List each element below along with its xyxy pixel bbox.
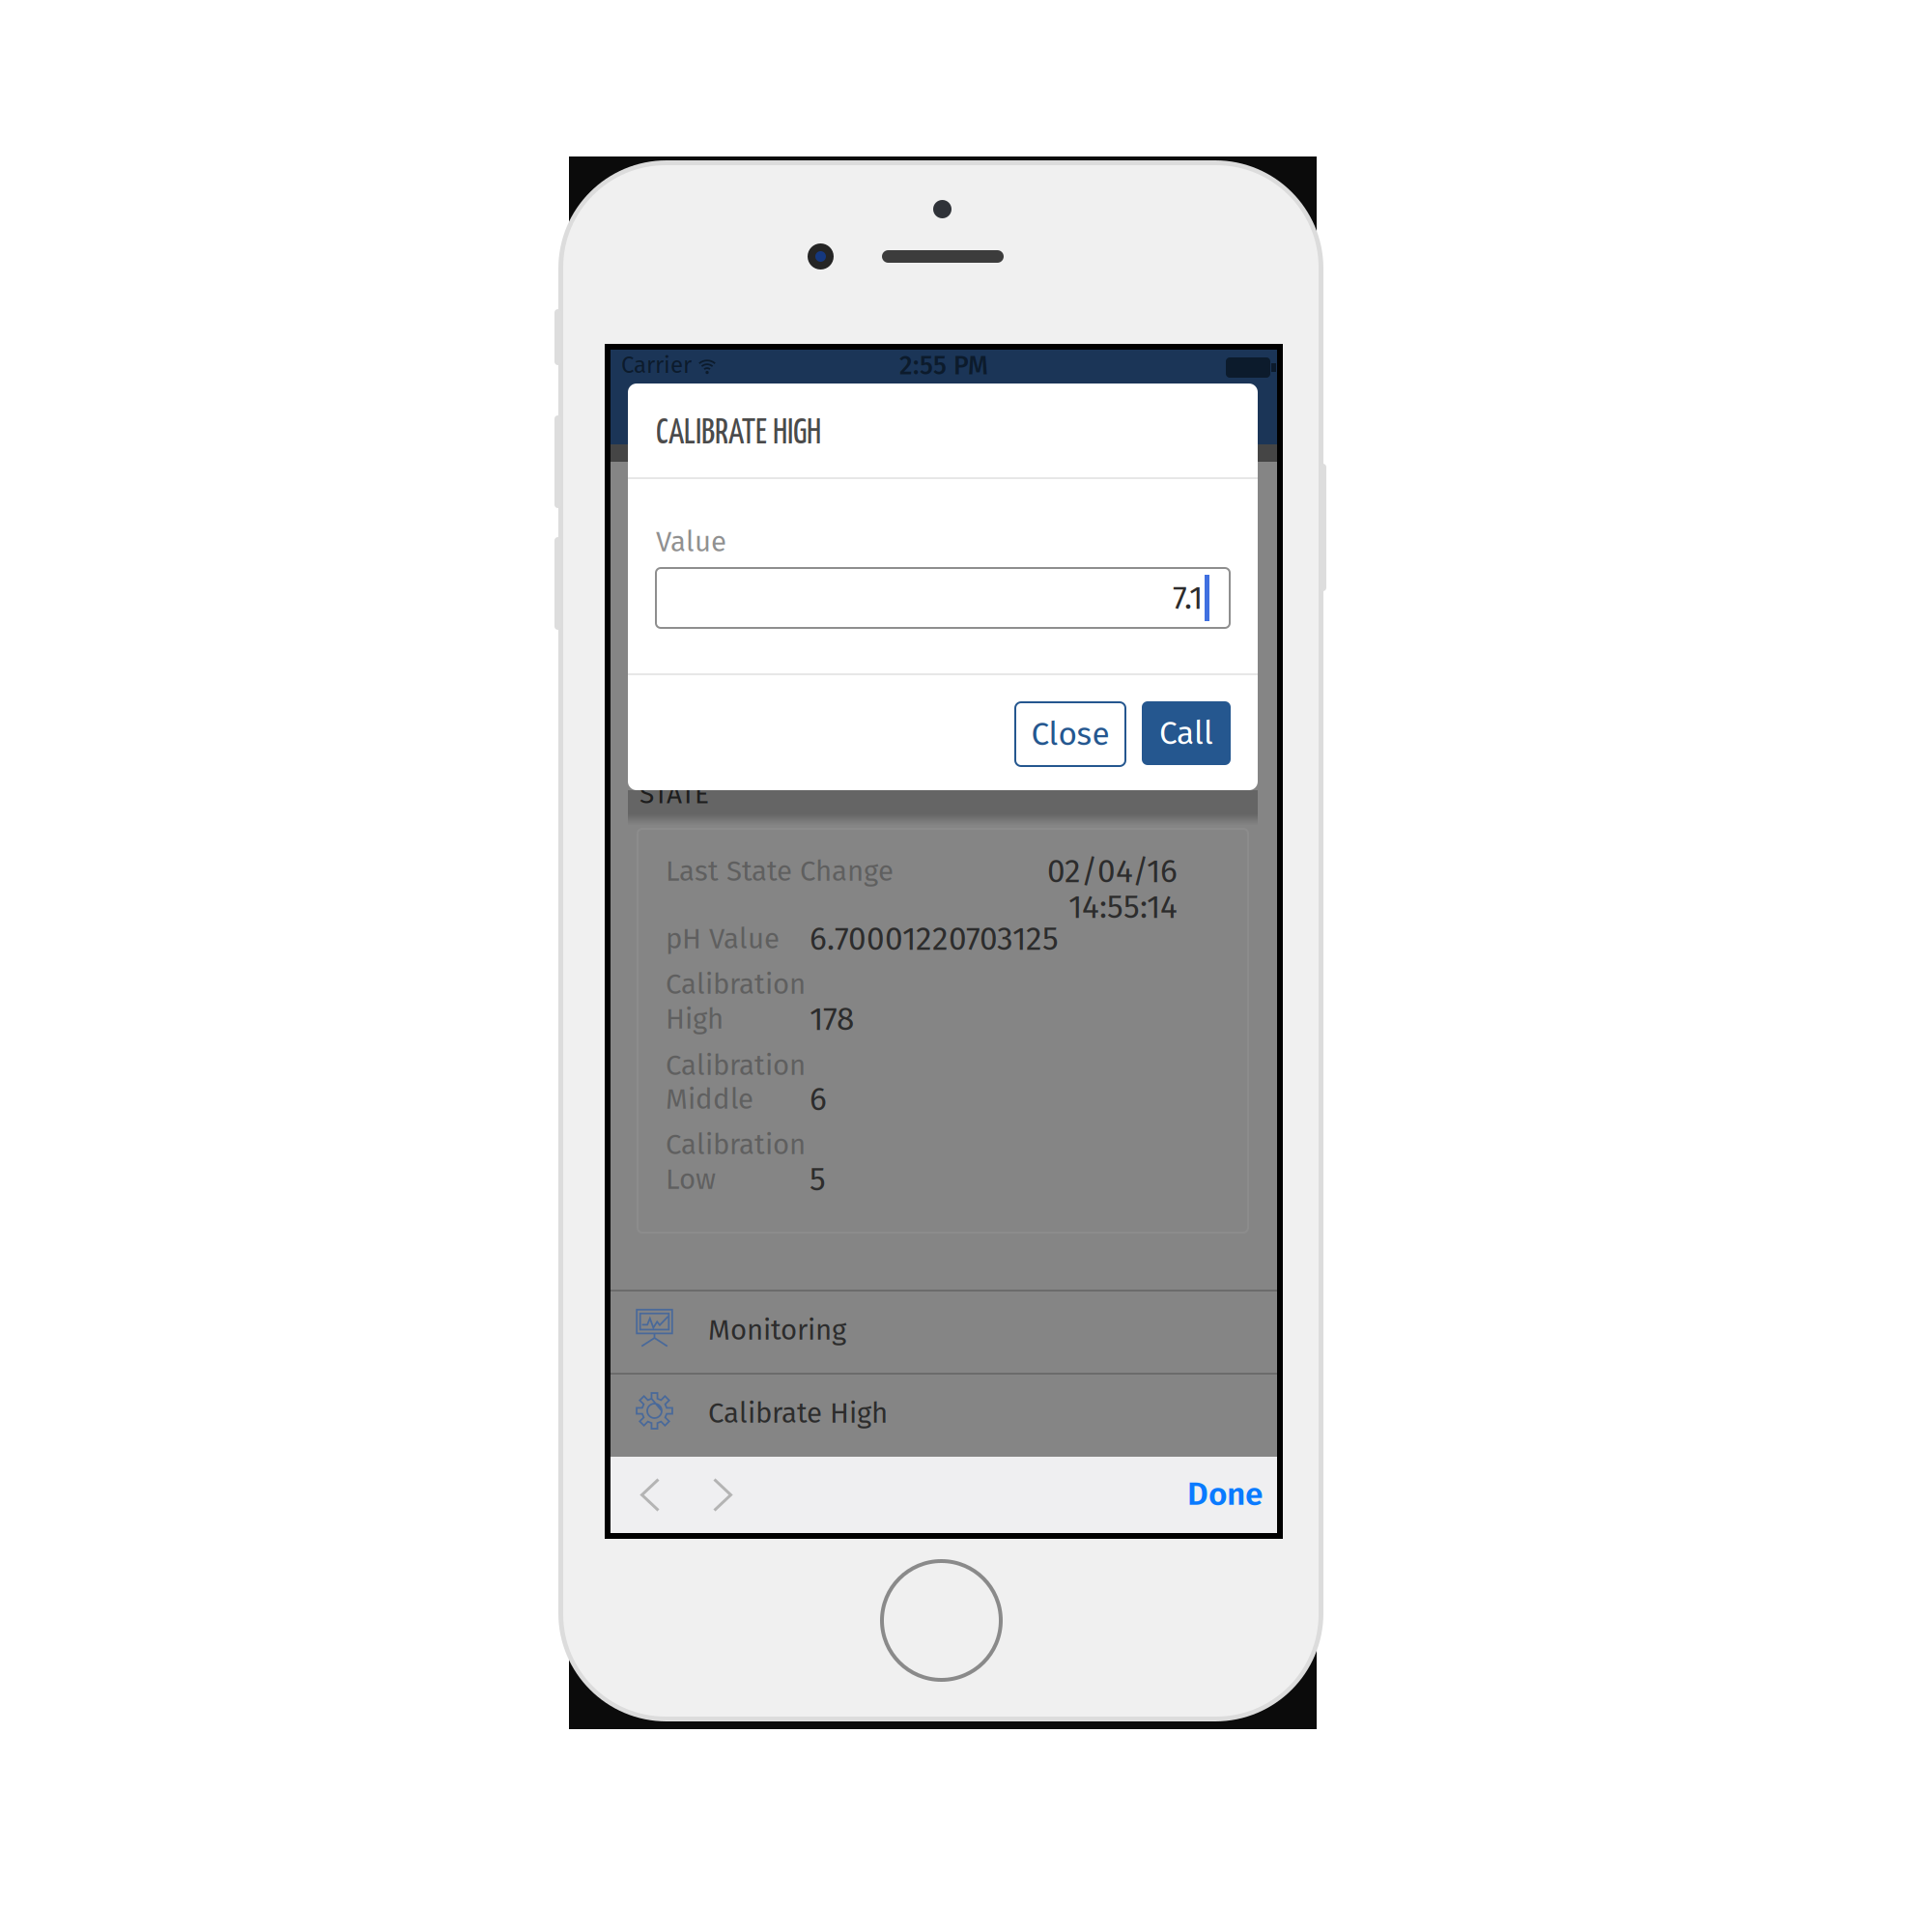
button[interactable]: Done — [1108, 1456, 1263, 1532]
button[interactable]: Forward — [686, 1457, 759, 1533]
staticText: 6 — [810, 1080, 827, 1119]
staticText: 7.1 — [1173, 579, 1203, 617]
staticText: Monitoring — [708, 1313, 846, 1347]
staticText: 14:55:14 — [1068, 888, 1178, 926]
button[interactable]: Calibrate High — [611, 1375, 1277, 1458]
staticText: 178 — [810, 1000, 854, 1038]
staticText: Done — [1187, 1475, 1263, 1513]
staticText: High — [666, 1002, 724, 1036]
staticText: pH Value — [666, 922, 780, 956]
staticText: Calibration — [666, 967, 806, 1001]
staticText: Low — [666, 1162, 716, 1196]
staticText: Value — [656, 525, 726, 559]
staticText: Calibration — [666, 1048, 806, 1082]
staticText: Last State Change — [666, 854, 894, 888]
button[interactable]: Back — [613, 1457, 687, 1533]
staticText: 5 — [810, 1160, 826, 1199]
button[interactable]: Call — [1142, 701, 1231, 765]
button[interactable]: Close — [1015, 702, 1125, 766]
staticText: CALIBRATE HIGH — [656, 417, 821, 451]
staticText: 6.70001220703125 — [810, 920, 1059, 958]
staticText: Carrier — [621, 351, 692, 379]
button[interactable]: Monitoring — [611, 1292, 1277, 1375]
staticText: STATE — [639, 778, 709, 810]
staticText: Calibrate High — [708, 1396, 888, 1430]
staticText: Middle — [666, 1082, 753, 1116]
staticText: Calibration — [666, 1128, 806, 1162]
staticText: Close — [1031, 715, 1109, 753]
staticText: 2:55 PM — [899, 350, 988, 381]
staticText: 02/04/16 — [1047, 852, 1178, 891]
staticText: Call — [1159, 714, 1213, 753]
